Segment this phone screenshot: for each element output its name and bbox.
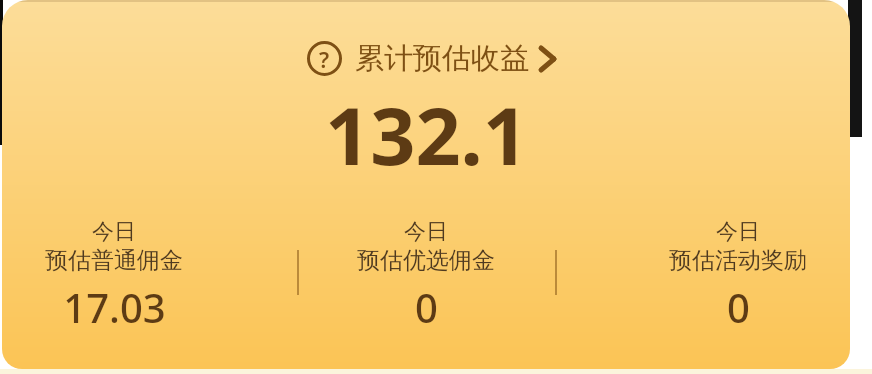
button[interactable]: 今日 [2,218,264,334]
staticText: 17.03 [63,280,166,334]
staticText: 今日 [92,218,136,246]
staticText: 预估活动奖励 [669,246,807,275]
staticText: ? [319,44,330,74]
staticText: 预估优选佣金 [357,246,495,275]
staticText: 0 [415,280,438,334]
staticText: 今日 [404,218,448,246]
button[interactable]: 今日 [276,218,576,334]
button[interactable]: ? [307,40,557,77]
staticText: 累计预估收益 [355,40,529,77]
staticText: 预估普通佣金 [45,246,183,275]
staticText: 0 [727,280,750,334]
staticText: 今日 [716,218,760,246]
button[interactable]: 今日 [588,218,850,334]
staticText: 132.1 [325,81,528,189]
